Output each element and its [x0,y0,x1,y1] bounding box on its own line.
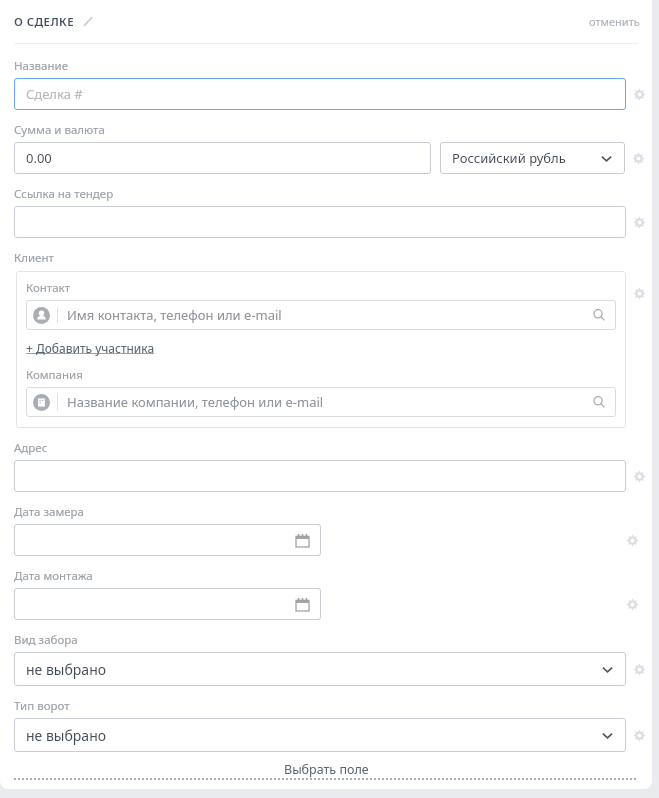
staticText: Контакт [26,280,71,296]
staticText: Название [14,58,68,74]
staticText: Адрес [14,440,48,456]
button[interactable]: Выбрать поле [14,761,638,780]
staticText: Тип ворот [14,698,70,714]
staticText: О СДЕЛКЕ [14,14,74,30]
button[interactable]: Настройки поля [633,663,646,676]
staticText: Компания [26,367,83,383]
button[interactable]: Выбрать дату [14,524,321,556]
staticText: Дата монтажа [14,568,93,584]
staticText: Выбрать поле [284,761,369,778]
button[interactable]: Настройки поля [633,470,646,483]
staticText: + Добавить участника [26,340,155,356]
button[interactable] [14,460,626,492]
button[interactable]: Настройки поля [633,88,646,101]
button[interactable]: Российский рубль [440,142,625,174]
button[interactable]: + Добавить участника [26,340,155,356]
staticText: Клиент [14,250,54,266]
button[interactable]: Настройки поля [626,598,639,611]
button[interactable]: Название компании, телефон или e-mail [26,387,616,417]
staticText: Сумма и валюта [14,122,105,138]
other: Поиск [593,309,605,321]
button[interactable]: Настройки поля [633,729,646,742]
staticText: Российский рубль [452,149,566,167]
button[interactable] [14,206,626,238]
button[interactable]: 0.00 [14,142,431,174]
button[interactable]: Имя контакта, телефон или e-mail [26,300,616,330]
other: Редактировать [82,16,94,28]
button[interactable]: О СДЕЛКЕ [14,14,94,30]
button[interactable]: Настройки поля [632,152,645,165]
button[interactable]: Выбрать дату [14,588,321,620]
staticText: Название компании, телефон или e-mail [67,393,324,411]
other: Выбрать дату [296,598,309,611]
button[interactable]: Сделка # [14,78,626,110]
other: Поиск [593,396,605,408]
button[interactable]: отменить [589,14,640,29]
staticText: не выбрано [26,726,107,745]
staticText: не выбрано [26,660,107,679]
other: Выбрать дату [296,534,309,547]
button[interactable]: Настройки поля [626,534,639,547]
button[interactable]: Настройки поля [633,216,646,229]
staticText: отменить [589,14,640,29]
staticText: Дата замера [14,504,84,520]
button[interactable]: не выбрано [14,652,626,686]
button[interactable]: не выбрано [14,718,626,752]
staticText: 0.00 [26,149,52,167]
staticText: Сделка # [26,85,83,103]
staticText: Имя контакта, телефон или e-mail [67,306,282,324]
staticText: Ссылка на тендер [14,186,114,202]
button[interactable]: Настройки поля [633,287,646,300]
staticText: Вид забора [14,632,78,648]
